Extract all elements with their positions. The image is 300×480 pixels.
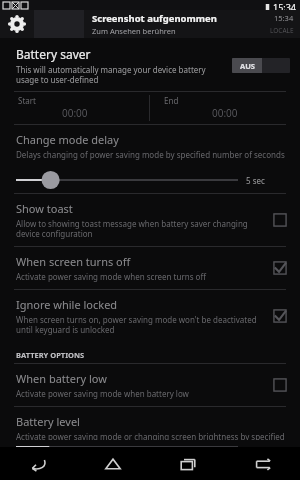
staticText: Start [18,95,36,106]
staticText: Activate power saving mode or changing s… [16,431,288,440]
button[interactable]: Home [75,447,150,480]
staticText: Battery level [16,414,80,429]
staticText: 15:34 [274,13,294,23]
button[interactable]: Back [0,447,75,480]
staticText: This will automatically manage your devi… [16,64,224,85]
staticText: When battery low [16,371,107,386]
staticText: 15:34 [273,1,297,13]
button[interactable]: End [150,92,300,124]
button[interactable]: Battery saver [0,38,300,91]
staticText: Delays changing of power saving mode by … [16,149,285,160]
button[interactable]: Change mode delay [0,125,300,167]
button[interactable]: Battery level [0,407,300,447]
staticText: When screen turns on, power saving mode … [16,314,264,335]
staticText: End [164,95,179,106]
button[interactable]: Show toast [0,194,300,246]
staticText: Show toast [16,201,73,216]
staticText: 00:00 [62,106,88,120]
staticText: 00:00 [212,106,238,120]
staticText: LOCALE [270,26,294,35]
other: Settings [8,15,26,33]
staticText: BATTERY OPTIONS [16,350,85,360]
button[interactable]: Start [0,92,149,124]
staticText: Allow to showing toast message when batt… [16,218,264,239]
button[interactable]: When screen turns off [0,247,300,289]
staticText: When screen turns off [16,254,131,269]
button[interactable]: When battery low [0,364,300,406]
staticText: Screenshot aufgenommen [92,12,217,25]
button[interactable]: Ignore while locked [0,290,300,342]
button[interactable]: AUS [232,58,290,73]
staticText: 5 sec [246,175,265,186]
staticText: Activate power saving mode when battery … [16,388,189,399]
button[interactable]: Settings [0,10,300,38]
staticText: Zum Ansehen berühren [92,26,176,36]
button[interactable]: Recent apps [150,447,225,480]
staticText: AUS [240,61,255,71]
button[interactable]: 5 sec [0,167,300,193]
staticText: Battery saver [16,46,91,62]
staticText: Change mode delay [16,132,119,147]
staticText: Activate power saving mode when screen t… [16,271,206,282]
button[interactable]: Rotate screen [225,447,300,480]
staticText: Ignore while locked [16,297,118,312]
